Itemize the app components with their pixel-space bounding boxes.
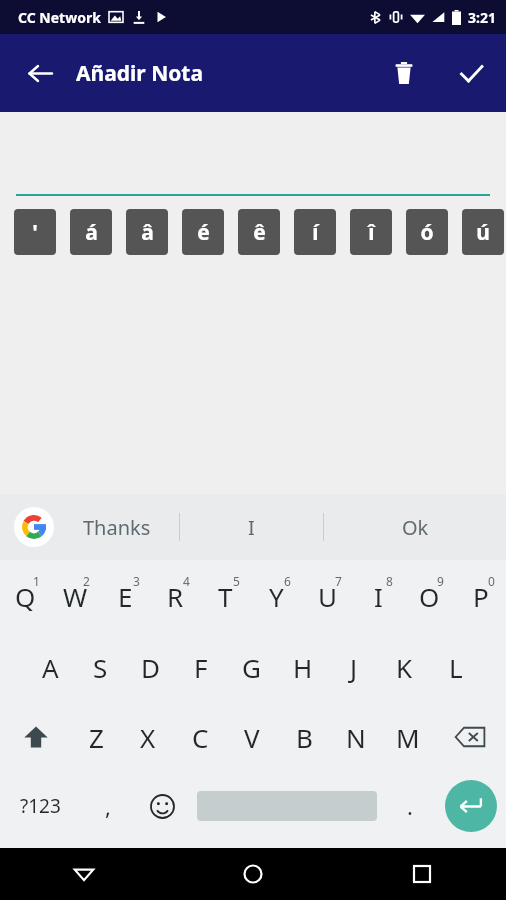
button[interactable]: Save <box>447 49 495 97</box>
button[interactable]: Delete <box>380 49 428 97</box>
staticText: CC Network <box>18 8 101 27</box>
button[interactable]: Z <box>71 702 122 772</box>
staticText: Thanks <box>83 514 151 541</box>
button[interactable]: P <box>455 560 506 632</box>
staticText: 6 <box>284 573 291 589</box>
staticText: M <box>396 720 420 755</box>
button[interactable]: Q <box>0 560 50 632</box>
staticText: 7 <box>335 573 342 589</box>
staticText: á <box>85 218 98 247</box>
staticText: N <box>346 720 366 755</box>
button[interactable]: Back <box>16 49 64 97</box>
staticText: U <box>318 579 338 614</box>
button[interactable]: C <box>174 702 226 772</box>
staticText: R <box>167 579 184 614</box>
staticText: , <box>105 791 111 821</box>
staticText: C <box>192 720 209 755</box>
staticText: â <box>141 218 154 247</box>
staticText: Añadir Nota <box>76 59 204 88</box>
button[interactable]: T <box>200 560 251 632</box>
staticText: Q <box>15 579 36 614</box>
button[interactable]: , <box>80 772 135 840</box>
button[interactable]: D <box>125 632 175 702</box>
button[interactable]: K <box>379 632 430 702</box>
staticText: 5 <box>233 573 240 589</box>
button[interactable]: Back <box>0 848 168 900</box>
staticText: J <box>350 650 358 685</box>
button[interactable]: V <box>226 702 278 772</box>
button[interactable]: J <box>328 632 379 702</box>
button[interactable]: Thanks <box>54 494 179 560</box>
staticText: í <box>312 218 319 247</box>
staticText: 3:21 <box>468 8 496 27</box>
staticText: O <box>419 579 440 614</box>
button[interactable]: é <box>182 209 224 255</box>
button[interactable]: á <box>70 209 112 255</box>
button[interactable]: Enter <box>445 780 497 832</box>
button[interactable]: F <box>175 632 226 702</box>
button[interactable]: X <box>122 702 174 772</box>
staticText: T <box>218 579 233 614</box>
staticText: A <box>42 650 59 685</box>
staticText: ' <box>32 218 38 247</box>
button[interactable]: Ok <box>324 494 506 560</box>
button[interactable]: A <box>25 632 75 702</box>
button[interactable]: â <box>126 209 168 255</box>
button[interactable]: í <box>294 209 336 255</box>
staticText: ?123 <box>20 793 61 819</box>
button[interactable]: Home <box>168 848 337 900</box>
button[interactable]: E <box>100 560 150 632</box>
staticText: 8 <box>386 573 393 589</box>
staticText: H <box>293 650 313 685</box>
button[interactable]: G <box>226 632 277 702</box>
button[interactable]: M <box>382 702 434 772</box>
button[interactable]: B <box>278 702 330 772</box>
button[interactable]: Y <box>251 560 302 632</box>
staticText: Z <box>89 720 104 755</box>
button[interactable]: W <box>50 560 100 632</box>
button[interactable]: U <box>302 560 353 632</box>
staticText: F <box>194 650 208 685</box>
staticText: G <box>242 650 261 685</box>
staticText: I <box>248 514 255 541</box>
button[interactable]: O <box>404 560 455 632</box>
button[interactable]: Google <box>14 507 54 547</box>
button[interactable]: Recent apps <box>337 848 506 900</box>
button[interactable]: ó <box>406 209 448 255</box>
button[interactable]: ê <box>238 209 280 255</box>
staticText: 1 <box>33 573 40 589</box>
staticText: 4 <box>183 573 190 589</box>
button[interactable]: L <box>430 632 481 702</box>
staticText: E <box>118 579 133 614</box>
button[interactable]: ' <box>14 209 56 255</box>
staticText: L <box>449 650 463 685</box>
button[interactable]: . <box>384 772 436 840</box>
button[interactable]: N <box>330 702 382 772</box>
staticText: é <box>197 218 210 247</box>
staticText: 9 <box>437 573 444 589</box>
button[interactable]: S <box>75 632 125 702</box>
button[interactable]: R <box>150 560 200 632</box>
staticText: V <box>244 720 260 755</box>
button[interactable]: Backspace <box>434 702 506 772</box>
button[interactable]: ú <box>462 209 504 255</box>
staticText: î <box>368 218 375 247</box>
staticText: Y <box>269 579 284 614</box>
staticText: ú <box>476 218 490 247</box>
button[interactable]: H <box>277 632 328 702</box>
staticText: X <box>140 720 156 755</box>
button[interactable]: Emoji <box>135 772 190 840</box>
button[interactable]: ?123 <box>0 772 80 840</box>
button[interactable]: Shift <box>0 702 71 772</box>
button[interactable]: I <box>353 560 404 632</box>
staticText: I <box>374 579 383 614</box>
button[interactable]: I <box>180 494 323 560</box>
button[interactable]: î <box>350 209 392 255</box>
staticText: ê <box>253 218 266 247</box>
staticText: W <box>63 579 88 614</box>
staticText: Ok <box>402 514 429 541</box>
staticText: ó <box>420 218 434 247</box>
staticText: K <box>396 650 413 685</box>
staticText: 3 <box>133 573 140 589</box>
